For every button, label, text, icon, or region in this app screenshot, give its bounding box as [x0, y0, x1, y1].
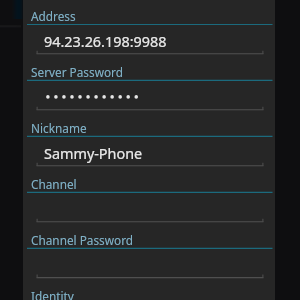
staticText: Channel Password — [31, 232, 134, 248]
staticText: Sammy-Phone — [44, 144, 143, 164]
staticText: Identity — [31, 288, 74, 300]
staticText: Address — [31, 8, 76, 24]
staticText: 94.23.26.198:9988 — [44, 32, 167, 52]
staticText: Nickname — [31, 120, 87, 136]
staticText: Server Password — [31, 64, 123, 80]
staticText: Channel — [31, 176, 77, 192]
